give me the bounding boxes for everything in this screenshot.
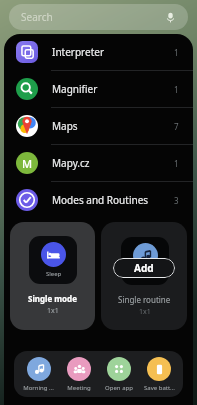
button[interactable]: Open app <box>99 351 139 397</box>
staticText: Interpreter <box>52 45 105 59</box>
button[interactable]: Interpreter <box>4 34 193 70</box>
button[interactable]: Modes and Routines <box>4 182 193 218</box>
staticText: 1x1 <box>47 306 59 316</box>
button[interactable]: Save batt... <box>139 351 179 397</box>
staticText: Morning ... <box>23 384 54 392</box>
button[interactable]: Search <box>9 4 188 30</box>
staticText: Morning <box>133 271 158 279</box>
other: Voice search <box>165 12 176 23</box>
staticText: Meeting <box>67 384 91 392</box>
button[interactable]: M <box>4 145 193 181</box>
staticText: 1 <box>174 158 179 169</box>
staticText: Single mode <box>28 293 77 304</box>
staticText: Modes and Routines <box>52 193 149 207</box>
staticText: Add <box>134 261 154 275</box>
staticText: Open app <box>105 384 133 392</box>
staticText: Maps <box>52 119 78 133</box>
staticText: Search <box>21 10 53 24</box>
staticText: 3 <box>174 195 179 206</box>
button[interactable]: Sleep <box>10 222 95 330</box>
staticText: Save batt... <box>144 384 175 392</box>
staticText: Single routine <box>118 294 171 305</box>
staticText: 7 <box>174 121 179 132</box>
staticText: Sleep <box>46 270 62 278</box>
button[interactable]: Magnifier <box>4 71 193 107</box>
button[interactable]: Meeting <box>59 351 99 397</box>
staticText: 1x1 <box>139 307 151 317</box>
staticText: Magnifier <box>52 82 98 96</box>
staticText: Mapy.cz <box>52 156 90 170</box>
staticText: 1 <box>174 47 179 58</box>
button[interactable]: Maps <box>4 108 193 144</box>
button[interactable]: Add <box>113 258 175 278</box>
button[interactable]: Morning ... <box>18 351 59 397</box>
staticText: M <box>22 156 33 171</box>
staticText: 1 <box>174 84 179 95</box>
button[interactable]: Morning <box>101 222 187 330</box>
